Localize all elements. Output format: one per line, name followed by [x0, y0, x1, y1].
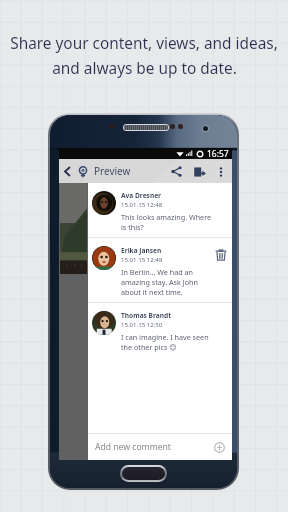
staticText: Ava Dresner: [121, 191, 162, 200]
button[interactable]: Delete: [212, 246, 230, 264]
staticText: amazing stay. Ask John: [121, 277, 198, 287]
staticText: 15.01.15 12:48: [121, 200, 163, 208]
staticText: This looks amazing. Where: [121, 212, 212, 222]
staticText: 15.01.15 12:50: [121, 320, 163, 328]
staticText: I can imagine. I have seen: [121, 332, 209, 342]
staticText: Add new comment: [95, 441, 171, 453]
button[interactable]: More options: [213, 160, 229, 183]
staticText: the other pics 😊: [121, 342, 177, 352]
staticText: In Berlin... We had an: [121, 267, 193, 277]
button[interactable]: Back: [59, 160, 75, 183]
staticText: is this?: [121, 222, 144, 232]
button[interactable]: Share: [166, 160, 186, 183]
staticText: and always be up to date.: [52, 58, 237, 79]
button[interactable]: Thomas Brandt: [88, 303, 232, 357]
staticText: about it next time.: [121, 287, 183, 297]
staticText: Preview: [94, 164, 131, 178]
button[interactable]: Add comment: [210, 438, 228, 456]
staticText: 16:57: [207, 148, 229, 159]
button[interactable]: Erika Jansen: [88, 238, 232, 302]
button[interactable]: Export: [190, 160, 210, 183]
staticText: Erika Jansen: [121, 246, 162, 255]
staticText: 15.01.15 12:49: [121, 255, 163, 263]
button[interactable]: Ava Dresner: [88, 183, 232, 237]
staticText: Share your content, views, and ideas,: [10, 33, 278, 54]
staticText: Thomas Brandt: [121, 311, 172, 320]
button[interactable]: Add new comment: [88, 434, 232, 460]
